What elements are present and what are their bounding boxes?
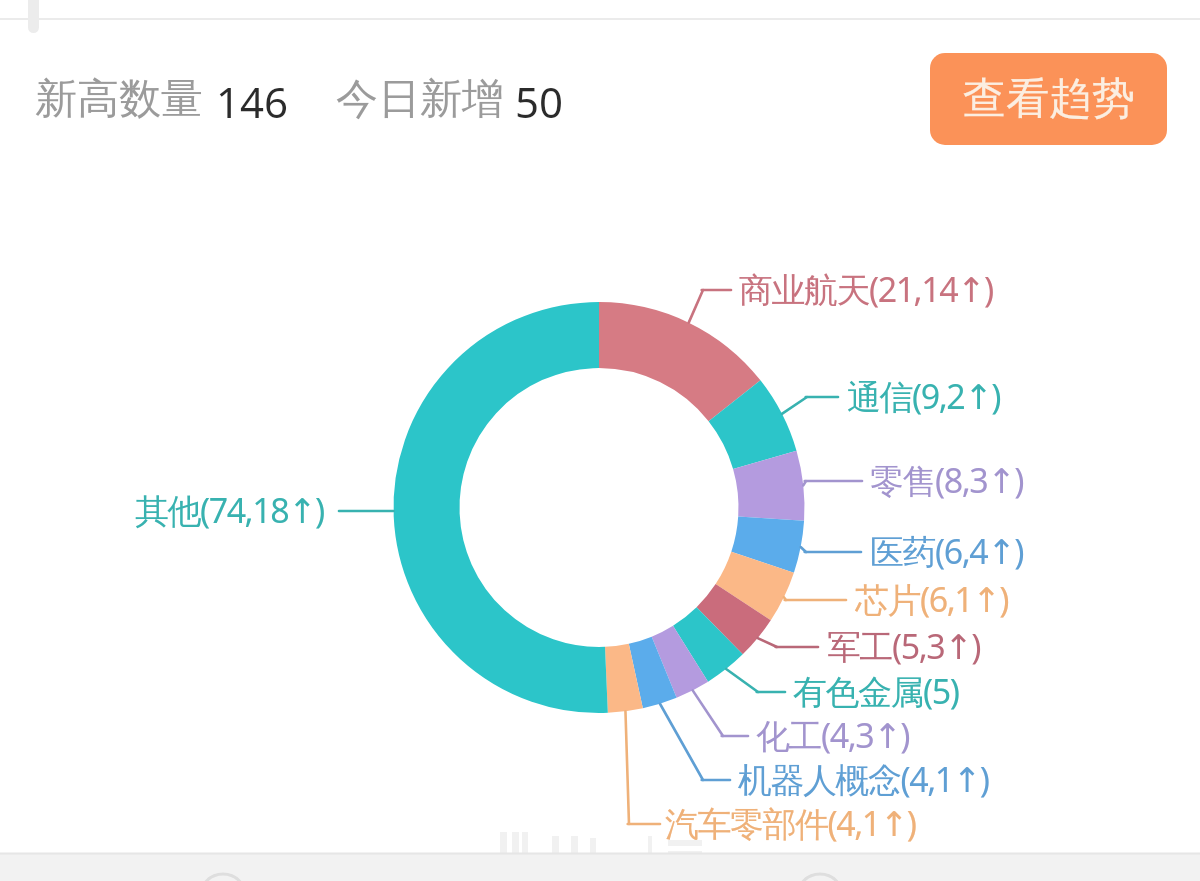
button[interactable]: Home <box>0 853 240 881</box>
button[interactable]: 军工(5,3↑) <box>827 623 980 669</box>
staticText: 医药(6,4↑) <box>870 528 1023 574</box>
button[interactable]: 查看趋势 <box>930 53 1167 145</box>
staticText: 有色金属(5) <box>793 668 959 714</box>
button[interactable]: 有色金属(5) <box>793 668 959 714</box>
staticText: 今日新增 <box>336 73 504 126</box>
button[interactable]: 芯片(6,1↑) <box>855 576 1008 622</box>
button[interactable]: 化工(4,3↑) <box>756 712 909 758</box>
staticText: 146 <box>216 73 289 130</box>
button[interactable]: 其他(74,18↑) <box>135 487 324 533</box>
staticText: 其他(74,18↑) <box>135 487 324 533</box>
button[interactable]: 商业航天(21,14↑) <box>739 266 993 312</box>
button[interactable]: 零售(8,3↑) <box>870 457 1023 503</box>
button[interactable]: 医药(6,4↑) <box>870 528 1023 574</box>
staticText: 新高数量 <box>35 73 203 126</box>
button[interactable]: 机器人概念(4,1↑) <box>738 756 989 802</box>
staticText: 汽车零部件(4,1↑) <box>665 800 916 846</box>
staticText: 芯片(6,1↑) <box>855 576 1008 622</box>
staticText: 军工(5,3↑) <box>827 623 980 669</box>
staticText: 化工(4,3↑) <box>756 712 909 758</box>
staticText: 机器人概念(4,1↑) <box>738 756 989 802</box>
staticText: 50 <box>515 73 564 130</box>
staticText: 查看趋势 <box>963 72 1135 126</box>
button[interactable]: 通信(9,2↑) <box>847 373 1000 419</box>
staticText: 商业航天(21,14↑) <box>739 266 993 312</box>
button[interactable]: Portfolio <box>720 853 960 881</box>
staticText: 通信(9,2↑) <box>847 373 1000 419</box>
staticText: 零售(8,3↑) <box>870 457 1023 503</box>
button[interactable]: 汽车零部件(4,1↑) <box>665 800 916 846</box>
